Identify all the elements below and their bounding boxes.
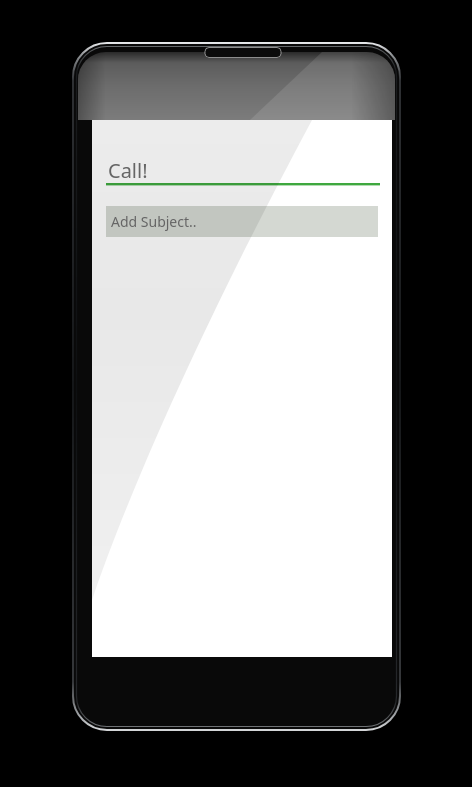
- button[interactable]: Add Subject field: [106, 206, 378, 237]
- button[interactable]: Call title field: [106, 152, 378, 186]
